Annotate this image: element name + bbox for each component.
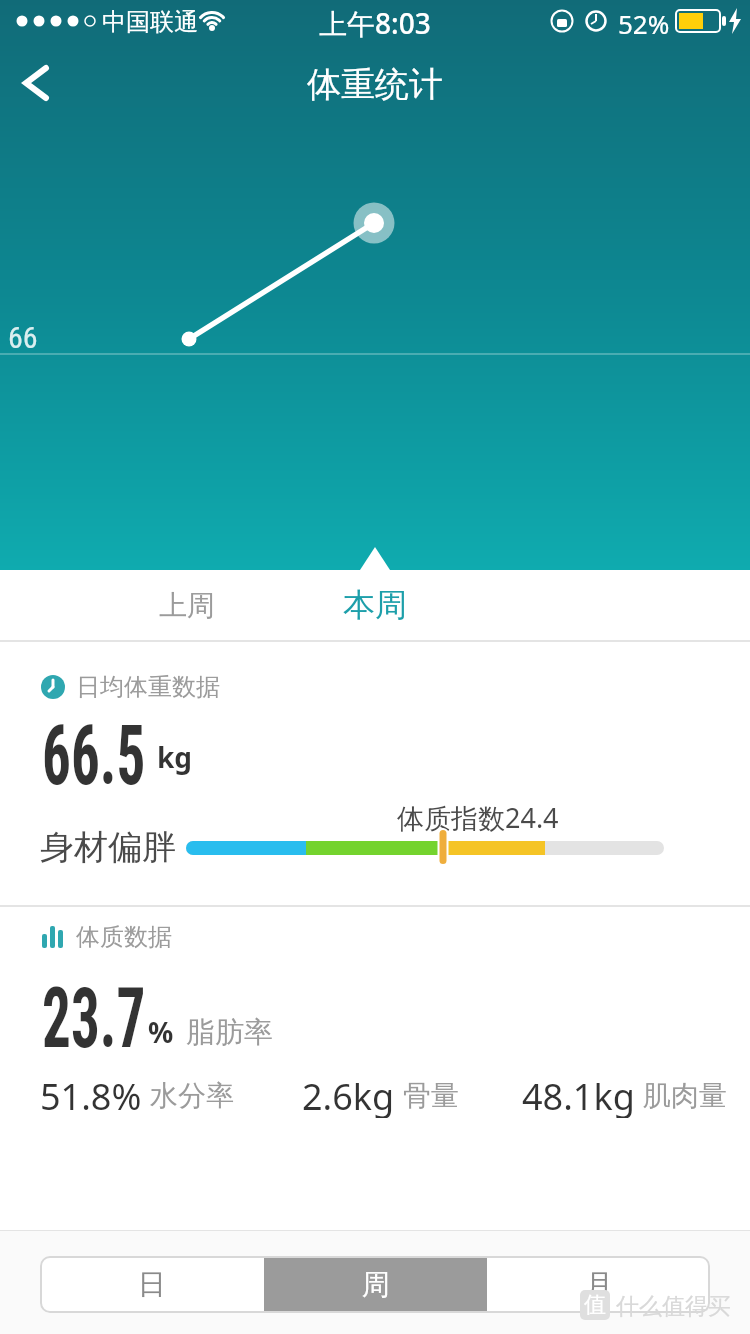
staticText: 本周 [343,585,407,625]
staticText: 上午8:03 [319,4,431,42]
staticText: 水分率 [150,1078,234,1113]
button[interactable]: 月 [487,1256,710,1313]
button[interactable]: 周 [264,1256,487,1313]
staticText: 52% [618,6,670,36]
staticText: 周 [362,1267,390,1302]
staticText: kg [157,738,193,776]
staticText: 51.8% [40,1072,142,1118]
staticText: 2.6kg [302,1072,395,1118]
button[interactable]: 上周 [107,572,267,638]
staticText: 中国联通 [102,7,198,37]
staticText: 月 [585,1267,613,1302]
staticText: % [148,1013,174,1051]
staticText: 48.1kg [522,1072,635,1118]
staticText: 脂肪率 [186,1014,273,1051]
staticText: 骨量 [403,1078,459,1113]
staticText: 什么值得买 [616,1292,731,1321]
staticText: 上周 [159,588,215,623]
staticText: 体质数据 [76,922,172,952]
staticText: 23.7 [42,969,145,1067]
staticText: 值 [584,1291,606,1319]
staticText: 日均体重数据 [76,672,220,702]
staticText: 身材偏胖 [40,826,176,866]
staticText: 日 [138,1267,166,1302]
staticText: 肌肉量 [643,1078,727,1113]
staticText: 体重统计 [307,63,443,106]
button[interactable]: 本周 [295,572,455,638]
staticText: 体质指数24.4 [397,799,559,835]
staticText: 66 [8,320,38,354]
button[interactable] [8,56,64,112]
button[interactable]: 日 [40,1256,264,1313]
staticText: 66.5 [42,706,145,804]
